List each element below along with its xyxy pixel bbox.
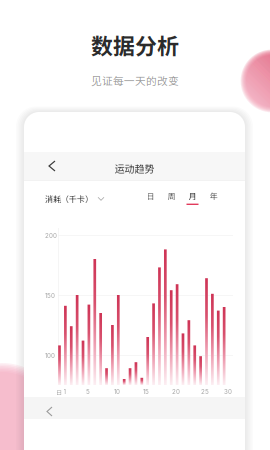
- staticText: 30: [224, 388, 232, 395]
- staticText: 25: [201, 388, 209, 395]
- staticText: 日: [56, 388, 62, 397]
- button[interactable]: Back: [39, 399, 60, 424]
- staticText: 5: [86, 388, 90, 395]
- button[interactable]: 年: [203, 190, 224, 205]
- button[interactable]: 周: [161, 190, 182, 205]
- staticText: 数据分析: [91, 29, 179, 61]
- button[interactable]: 月: [182, 190, 203, 205]
- staticText: 10: [114, 388, 120, 395]
- staticText: 月: [188, 190, 196, 202]
- staticText: 运动趋势: [114, 161, 154, 175]
- staticText: 200: [45, 232, 57, 239]
- staticText: 20: [172, 388, 180, 395]
- staticText: 日: [146, 190, 154, 202]
- staticText: 消耗（千卡）: [45, 193, 93, 205]
- staticText: 周: [167, 190, 175, 202]
- staticText: 见证每一天的改变: [91, 73, 179, 88]
- staticText: 1: [63, 388, 65, 395]
- button[interactable]: 日: [140, 190, 161, 205]
- staticText: 100: [45, 352, 55, 359]
- staticText: 年: [209, 190, 217, 202]
- button[interactable]: Back: [40, 152, 64, 180]
- staticText: 150: [45, 292, 55, 299]
- staticText: 15: [143, 388, 149, 395]
- button[interactable]: 消耗（千卡）: [45, 193, 104, 205]
